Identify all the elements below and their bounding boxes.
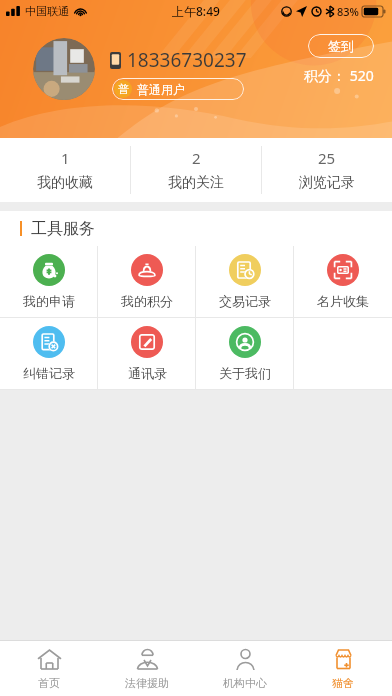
staticText: 1 — [61, 148, 70, 168]
staticText: 浏览记录 — [299, 174, 355, 192]
staticText: 猫舍 — [332, 676, 354, 690]
staticText: 中国联通 — [25, 4, 69, 18]
staticText: 关于我们 — [219, 365, 271, 381]
staticText: 纠错记录 — [23, 365, 75, 381]
button[interactable]: 通讯录 — [98, 318, 196, 389]
staticText: 积分： 520 — [304, 66, 374, 85]
staticText: 名片收集 — [317, 293, 369, 309]
button[interactable]: 25 — [262, 138, 392, 202]
button[interactable]: 猫舍 — [294, 641, 392, 696]
staticText: 我的申请 — [23, 293, 75, 309]
staticText: 通讯录 — [128, 365, 167, 381]
staticText: 首页 — [38, 676, 60, 690]
button[interactable]: 名片收集 — [294, 246, 392, 317]
staticText: 交易记录 — [219, 293, 271, 309]
button[interactable]: 法律援助 — [98, 641, 196, 696]
staticText: 我的收藏 — [37, 174, 93, 192]
button[interactable]: 签到 — [308, 34, 374, 58]
staticText: 工具服务 — [31, 219, 95, 239]
button[interactable]: 2 — [131, 138, 261, 202]
button[interactable]: 机构中心 — [196, 641, 294, 696]
staticText: 普通用户 — [137, 82, 185, 97]
staticText: 2 — [192, 148, 201, 168]
button[interactable]: 交易记录 — [196, 246, 294, 317]
staticText: 普 — [118, 82, 129, 96]
button[interactable]: 首页 — [0, 641, 98, 696]
button[interactable]: 纠错记录 — [0, 318, 98, 389]
button[interactable]: 普 — [112, 78, 244, 100]
staticText: 我的关注 — [168, 174, 224, 192]
staticText: 25 — [318, 148, 336, 168]
staticText: 上午8:49 — [172, 3, 220, 19]
button[interactable]: 1 — [0, 138, 130, 202]
staticText: 机构中心 — [223, 676, 267, 690]
button[interactable]: 我的申请 — [0, 246, 98, 317]
staticText: 83% — [337, 4, 359, 19]
button[interactable]: Avatar — [33, 38, 95, 100]
button[interactable]: 关于我们 — [196, 318, 294, 389]
staticText: 法律援助 — [125, 676, 169, 690]
button[interactable]: 我的积分 — [98, 246, 196, 317]
staticText: 我的积分 — [121, 293, 173, 309]
staticText: 18336730237 — [127, 47, 247, 73]
staticText: 签到 — [328, 38, 354, 54]
